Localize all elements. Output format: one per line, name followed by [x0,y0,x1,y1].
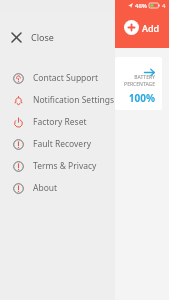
button[interactable]: Terms & Privacy [0,155,115,177]
button[interactable]: About [0,177,115,199]
staticText: 48% [135,2,147,10]
button[interactable]: Notification Settings [0,89,115,111]
staticText: Factory Reset [33,116,87,128]
staticText: Close [31,31,54,43]
staticText: BATTERY PERCENTAGE [115,74,155,88]
staticText: 4 [162,2,166,10]
staticText: Terms & Privacy [33,160,97,172]
staticText: Contact Support [33,72,99,84]
staticText: Notification Settings [33,94,115,106]
button[interactable]: Fault Recovery [0,133,115,155]
button[interactable]: Factory Reset [0,111,115,133]
button[interactable]: Open details [115,57,162,110]
staticText: Add [142,22,160,34]
button[interactable]: Add [120,18,164,37]
staticText: Fault Recovery [33,138,91,150]
button[interactable]: Close [0,26,115,48]
other: Open details [143,66,155,78]
button[interactable]: Contact Support [0,67,115,89]
staticText: 100% [128,91,155,105]
staticText: About [33,182,58,194]
